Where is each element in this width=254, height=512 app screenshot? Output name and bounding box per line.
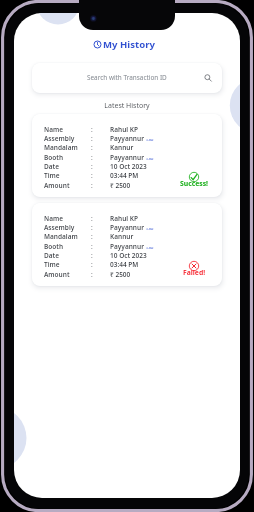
button[interactable]: Name	[32, 114, 222, 197]
staticText: Payyannur	[110, 153, 144, 162]
staticText: Amount	[44, 270, 70, 279]
staticText: Mandalam	[44, 232, 78, 241]
staticText: Name	[44, 125, 63, 134]
staticText: Payyannur	[110, 242, 144, 251]
staticText: പയ	[146, 227, 154, 231]
staticText: :	[91, 181, 93, 190]
staticText: ₹ 2500	[110, 181, 131, 190]
staticText: Mandalam	[44, 143, 78, 152]
staticText: Success!	[180, 179, 208, 188]
staticText: Search with Transaction ID	[87, 73, 167, 82]
staticText: :	[91, 214, 93, 223]
staticText: :	[91, 134, 93, 143]
staticText: Kannur	[110, 232, 134, 241]
staticText: Time	[44, 260, 60, 269]
staticText: പയ	[146, 138, 154, 142]
staticText: Assembly	[44, 223, 75, 232]
staticText: :	[91, 171, 93, 180]
staticText: Rahul KP	[110, 214, 139, 223]
button[interactable]: Name	[32, 203, 222, 286]
staticText: Payyannur	[110, 134, 144, 143]
staticText: Payyannur	[110, 223, 144, 232]
staticText: My History	[103, 38, 155, 51]
staticText: 10 Oct 2023	[110, 251, 147, 260]
staticText: Date	[44, 162, 60, 171]
staticText: Amount	[44, 181, 70, 190]
staticText: പയ	[146, 246, 154, 250]
other: History	[93, 40, 102, 49]
staticText: Date	[44, 251, 60, 260]
staticText: 10 Oct 2023	[110, 162, 147, 171]
staticText: Failed!	[183, 268, 206, 277]
staticText: :	[91, 125, 93, 134]
staticText: Name	[44, 214, 63, 223]
staticText: :	[91, 232, 93, 241]
staticText: :	[91, 270, 93, 279]
staticText: Time	[44, 171, 60, 180]
staticText: ₹ 2500	[110, 270, 131, 279]
staticText: Latest History	[14, 101, 240, 111]
staticText: :	[91, 162, 93, 171]
staticText: :	[91, 242, 93, 251]
staticText: 03:44 PM	[110, 260, 139, 269]
staticText: :	[91, 223, 93, 232]
staticText: 03:44 PM	[110, 171, 139, 180]
staticText: Booth	[44, 153, 64, 162]
staticText: Kannur	[110, 143, 134, 152]
staticText: Assembly	[44, 134, 75, 143]
staticText: Rahul KP	[110, 125, 139, 134]
staticText: :	[91, 251, 93, 260]
other: Search	[204, 74, 212, 82]
staticText: :	[91, 153, 93, 162]
button[interactable]: Search with Transaction ID	[32, 63, 222, 93]
staticText: Booth	[44, 242, 64, 251]
staticText: :	[91, 143, 93, 152]
staticText: :	[91, 260, 93, 269]
staticText: പയ	[146, 157, 154, 161]
